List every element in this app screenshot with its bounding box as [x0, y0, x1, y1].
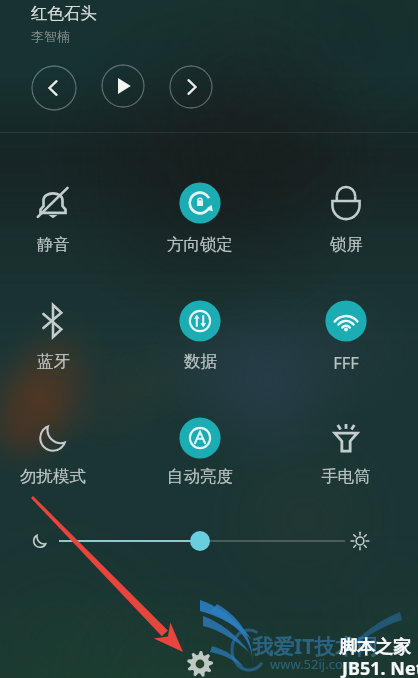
button[interactable]: Play: [101, 64, 145, 108]
staticText: 静音: [37, 234, 70, 255]
staticText: 李智楠: [31, 28, 70, 44]
staticText: FFF: [333, 351, 359, 373]
staticText: 勿扰模式: [20, 466, 86, 487]
button[interactable]: Next: [169, 65, 213, 109]
staticText: www.52ij.com: [270, 655, 355, 673]
button[interactable]: Lock screen: [282, 169, 410, 279]
button[interactable]: Bluetooth: [0, 287, 117, 397]
staticText: JB51. Net: [342, 656, 418, 678]
button[interactable]: Settings: [183, 647, 217, 678]
staticText: 手电筒: [321, 466, 371, 487]
staticText: 方向锁定: [167, 234, 233, 255]
button[interactable]: Previous: [31, 65, 77, 111]
button[interactable]: Rotation lock: [136, 169, 264, 279]
staticText: 蓝牙: [37, 351, 70, 372]
button[interactable]: Mute: [0, 169, 117, 279]
button[interactable]: Wi-Fi: [282, 287, 410, 397]
button[interactable]: Flashlight: [282, 404, 410, 514]
button[interactable]: Auto brightness: [136, 404, 264, 514]
button[interactable]: Mobile data: [136, 287, 264, 397]
button[interactable]: Do not disturb: [0, 404, 117, 514]
staticText: 红色石头: [31, 3, 97, 24]
staticText: 数据: [184, 351, 217, 372]
staticText: 锁屏: [330, 234, 363, 255]
button[interactable]: Brightness slider: [0, 516, 418, 566]
staticText: 自动亮度: [167, 466, 233, 487]
staticText: 我爱IT技术网: [252, 632, 378, 661]
staticText: 脚本之家: [339, 636, 411, 659]
